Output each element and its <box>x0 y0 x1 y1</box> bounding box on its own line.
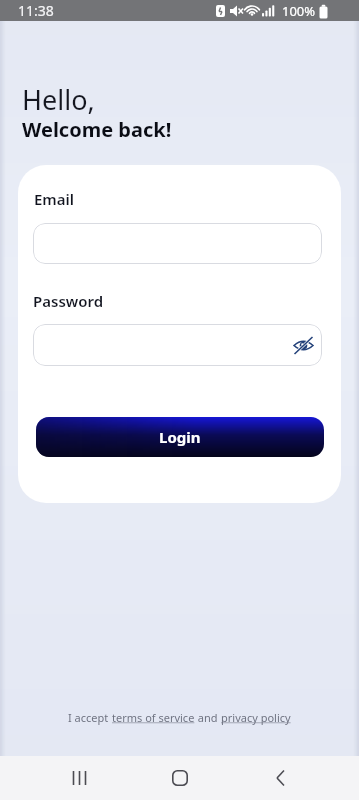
staticText: Hello, <box>22 81 95 118</box>
button[interactable]: terms of service <box>112 710 195 725</box>
staticText: 11:38 <box>18 1 54 20</box>
button[interactable] <box>56 756 104 800</box>
button[interactable] <box>33 223 322 264</box>
staticText: Login <box>159 427 201 447</box>
staticText: Email <box>34 189 75 209</box>
staticText: Welcome back! <box>22 116 172 143</box>
button[interactable] <box>256 756 304 800</box>
button[interactable] <box>156 756 204 800</box>
button[interactable]: privacy policy <box>221 710 291 725</box>
staticText: Password <box>33 291 104 311</box>
button[interactable] <box>33 324 322 366</box>
staticText: I accept <box>68 710 112 725</box>
staticText: and <box>195 710 221 725</box>
staticText: 100% <box>282 2 316 20</box>
button[interactable]: Login <box>36 417 324 457</box>
